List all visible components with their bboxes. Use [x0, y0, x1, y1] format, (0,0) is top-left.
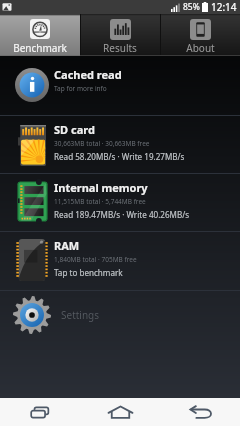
button[interactable]: Recents: [0, 398, 80, 426]
staticText: Read 189.47MB/s · Write 40.26MB/s: [54, 209, 190, 220]
button[interactable]: Settings: [0, 291, 240, 342]
staticText: RAM: [54, 238, 80, 253]
button[interactable]: Internal memory: [0, 174, 240, 231]
staticText: Cached read: [54, 67, 122, 82]
button[interactable]: About: [160, 14, 240, 56]
staticText: Benchmark: [13, 41, 67, 55]
button[interactable]: Back: [160, 398, 240, 426]
button[interactable]: Results: [80, 14, 160, 56]
staticText: Tap for more info: [54, 84, 107, 93]
button[interactable]: SD card: [0, 116, 240, 173]
staticText: Results: [103, 41, 137, 55]
button[interactable]: RAM: [0, 232, 240, 290]
button[interactable]: Cached read: [0, 56, 240, 115]
staticText: 11,515MB total · 5,744MB free: [54, 197, 146, 206]
staticText: 12:14: [211, 0, 237, 14]
staticText: SD card: [54, 122, 95, 137]
button[interactable]: Home: [80, 398, 160, 426]
staticText: 1,840MB total · 705MB free: [54, 255, 137, 264]
staticText: Settings: [61, 308, 100, 322]
staticText: Tap to benchmark: [54, 267, 123, 278]
staticText: About: [186, 41, 215, 55]
staticText: 30,663MB total · 30,663MB free: [54, 139, 150, 148]
button[interactable]: Benchmark: [0, 14, 80, 56]
staticText: Internal memory: [54, 180, 148, 195]
staticText: Read 58.20MB/s · Write 19.27MB/s: [54, 151, 185, 162]
staticText: 85%: [183, 1, 200, 13]
